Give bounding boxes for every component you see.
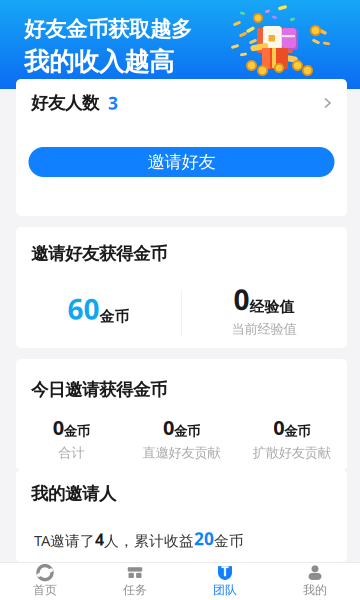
staticText: 0 [273,414,284,441]
staticText: TA邀请了 [34,530,95,550]
staticText: 邀请好友 [147,151,215,173]
staticText: 金币 [64,423,90,440]
staticText: 我的 [303,583,327,597]
staticText: 经验值 [249,298,294,316]
staticText: 首页 [33,583,57,597]
button[interactable]: 首页 [0,562,90,600]
staticText: 当前经验值 [231,321,296,337]
staticText: 0 [163,414,174,441]
staticText: 邀请好友获得金币 [31,243,167,264]
button[interactable]: 我的 [270,562,360,600]
staticText: 4 [95,529,104,550]
staticText: T [221,562,229,580]
staticText: 金币 [99,308,129,326]
staticText: 任务 [123,583,147,597]
staticText: 0 [53,414,64,441]
staticText: 直邀好友贡献 [142,445,220,461]
staticText: 好友金币获取越多 [24,16,192,42]
staticText: 团队 [213,583,237,597]
button[interactable]: T [180,562,270,600]
staticText: 合计 [58,445,84,461]
button[interactable]: 好友人数 [16,79,347,127]
staticText: 金币 [174,423,200,440]
staticText: 20 [194,527,214,550]
staticText: 60 [67,290,99,328]
button[interactable]: 任务 [90,562,180,600]
staticText: 今日邀请获得金币 [31,379,167,400]
staticText: 人，累计收益 [104,532,194,550]
staticText: 好友人数 [31,92,99,114]
staticText: 0 [233,281,249,318]
staticText: 我的邀请人 [31,483,116,504]
staticText: 3 [108,91,118,114]
staticText: 金币 [214,532,244,550]
staticText: 扩散好友贡献 [253,445,331,461]
staticText: 金币 [284,423,310,440]
staticText: 我的收入越高 [24,46,174,77]
button[interactable]: 邀请好友 [28,147,334,177]
